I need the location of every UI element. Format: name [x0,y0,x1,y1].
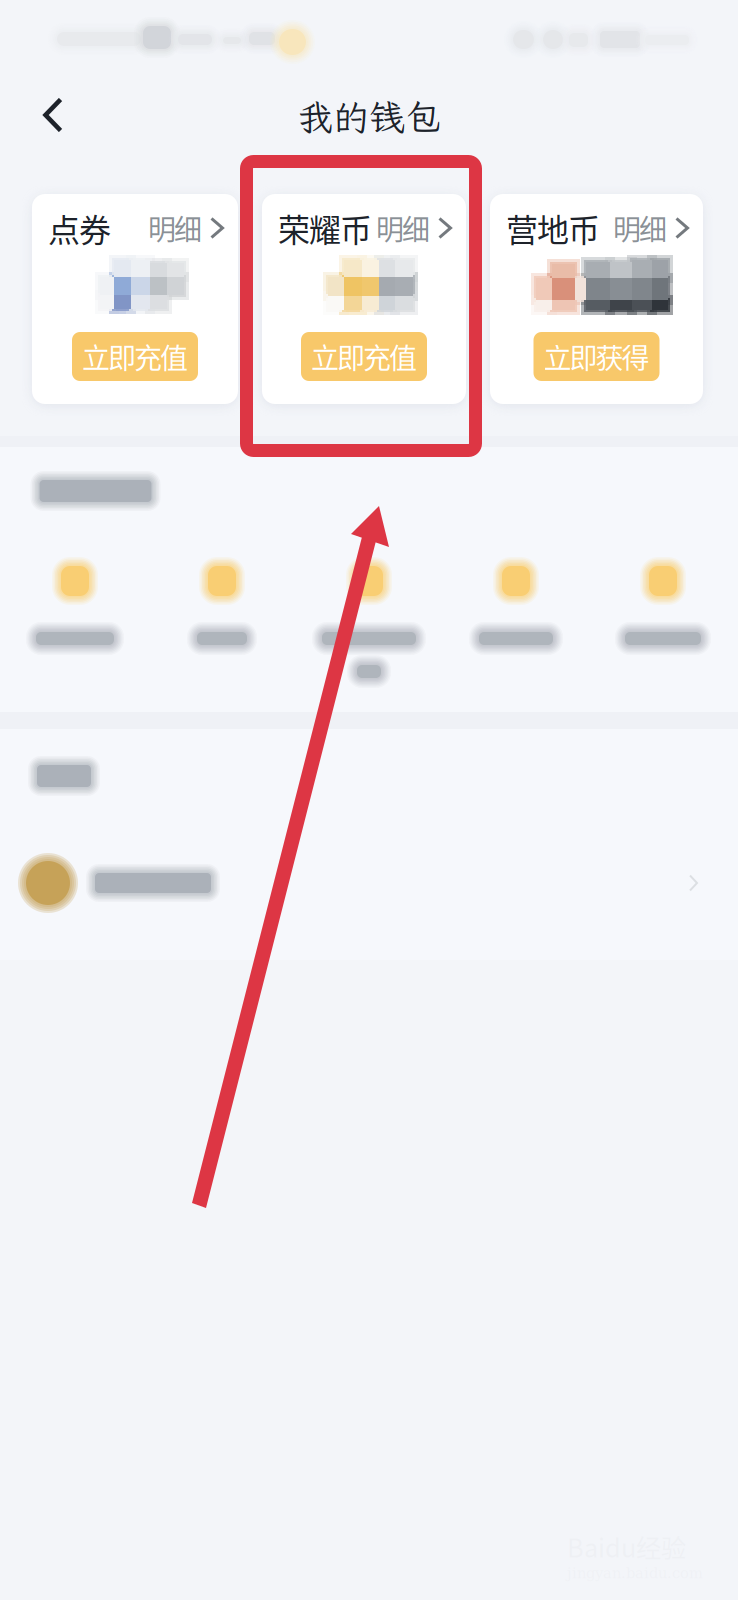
staticText: 立即充值 [311,336,417,377]
button[interactable]: 营地币 [490,194,703,404]
staticText: 明细 [148,208,202,248]
staticText: 立即充值 [82,336,188,377]
staticText: 点券 [48,205,111,251]
staticText: 荣耀币 [278,205,372,251]
button[interactable]: 荣耀币 [262,194,466,404]
button[interactable] [0,842,738,924]
button[interactable] [442,562,589,692]
button[interactable] [148,562,295,692]
staticText: 营地币 [506,205,600,251]
button[interactable] [589,562,736,692]
button[interactable]: Back [22,86,84,148]
staticText: 明细 [376,208,430,248]
staticText: 立即获得 [543,336,649,377]
staticText: 明细 [613,208,667,248]
staticText: 我的钱包 [297,93,441,141]
button[interactable]: 点券 [32,194,238,404]
button[interactable] [1,562,148,692]
button[interactable] [295,562,442,692]
